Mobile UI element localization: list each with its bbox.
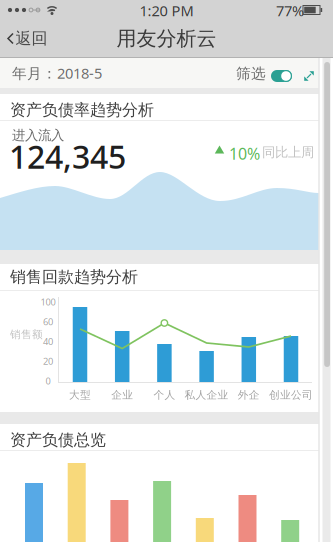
staticText: 100: [40, 296, 55, 308]
button[interactable]: Expand: [304, 71, 314, 81]
staticText: 同比上周: [262, 144, 314, 160]
staticText: 40: [43, 335, 53, 348]
staticText: 大型: [69, 388, 91, 401]
staticText: 用友分析云: [116, 26, 216, 51]
staticText: 销售额: [10, 328, 43, 341]
staticText: 20: [43, 355, 53, 367]
staticText: 资产负债总览: [10, 430, 106, 450]
staticText: 外企: [238, 388, 260, 401]
staticText: 0: [45, 375, 50, 387]
staticText: 10%: [229, 143, 260, 164]
staticText: 私人企业: [185, 388, 229, 401]
staticText: 企业: [111, 388, 133, 401]
staticText: 进入流入: [12, 127, 64, 143]
staticText: 个人: [153, 388, 175, 401]
staticText: 77%: [276, 1, 304, 20]
staticText: 返回: [15, 29, 47, 48]
staticText: 1:20 PM: [139, 1, 193, 20]
button[interactable]: 返回: [0, 24, 56, 54]
staticText: 销售回款趋势分析: [10, 267, 138, 287]
staticText: 创业公司: [269, 388, 313, 401]
staticText: 124,345: [9, 135, 126, 177]
staticText: 筛选: [236, 64, 266, 82]
button[interactable]: 年月：2018-5: [12, 58, 102, 88]
staticText: 年月：2018-5: [12, 63, 102, 83]
button[interactable]: Filter toggle: [271, 70, 292, 82]
staticText: 资产负债率趋势分析: [10, 100, 154, 120]
staticText: 60: [43, 316, 53, 328]
